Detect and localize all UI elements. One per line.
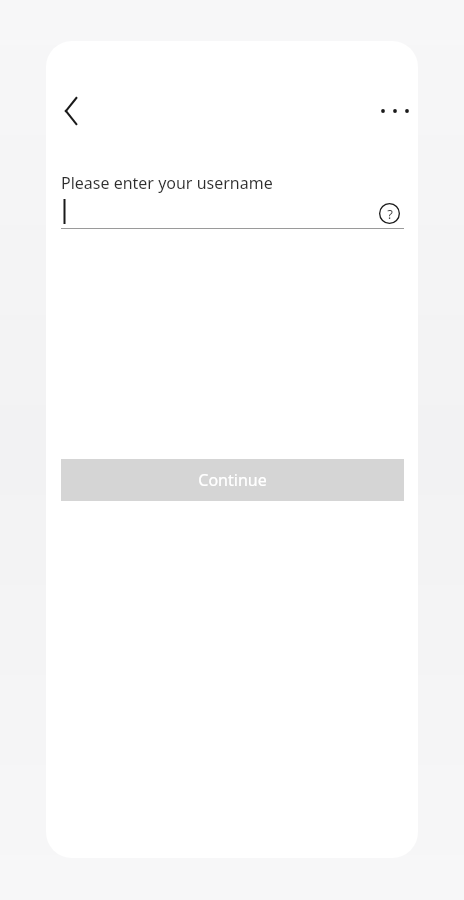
- button[interactable]: Help: [374, 198, 404, 228]
- button[interactable]: More options: [373, 96, 417, 126]
- staticText: ?: [387, 205, 393, 223]
- button[interactable]: Continue: [61, 459, 404, 501]
- staticText: Continue: [198, 469, 267, 491]
- button[interactable]: Back: [50, 89, 94, 133]
- button[interactable]: Help: [61, 196, 404, 230]
- staticText: Please enter your username: [61, 172, 273, 194]
